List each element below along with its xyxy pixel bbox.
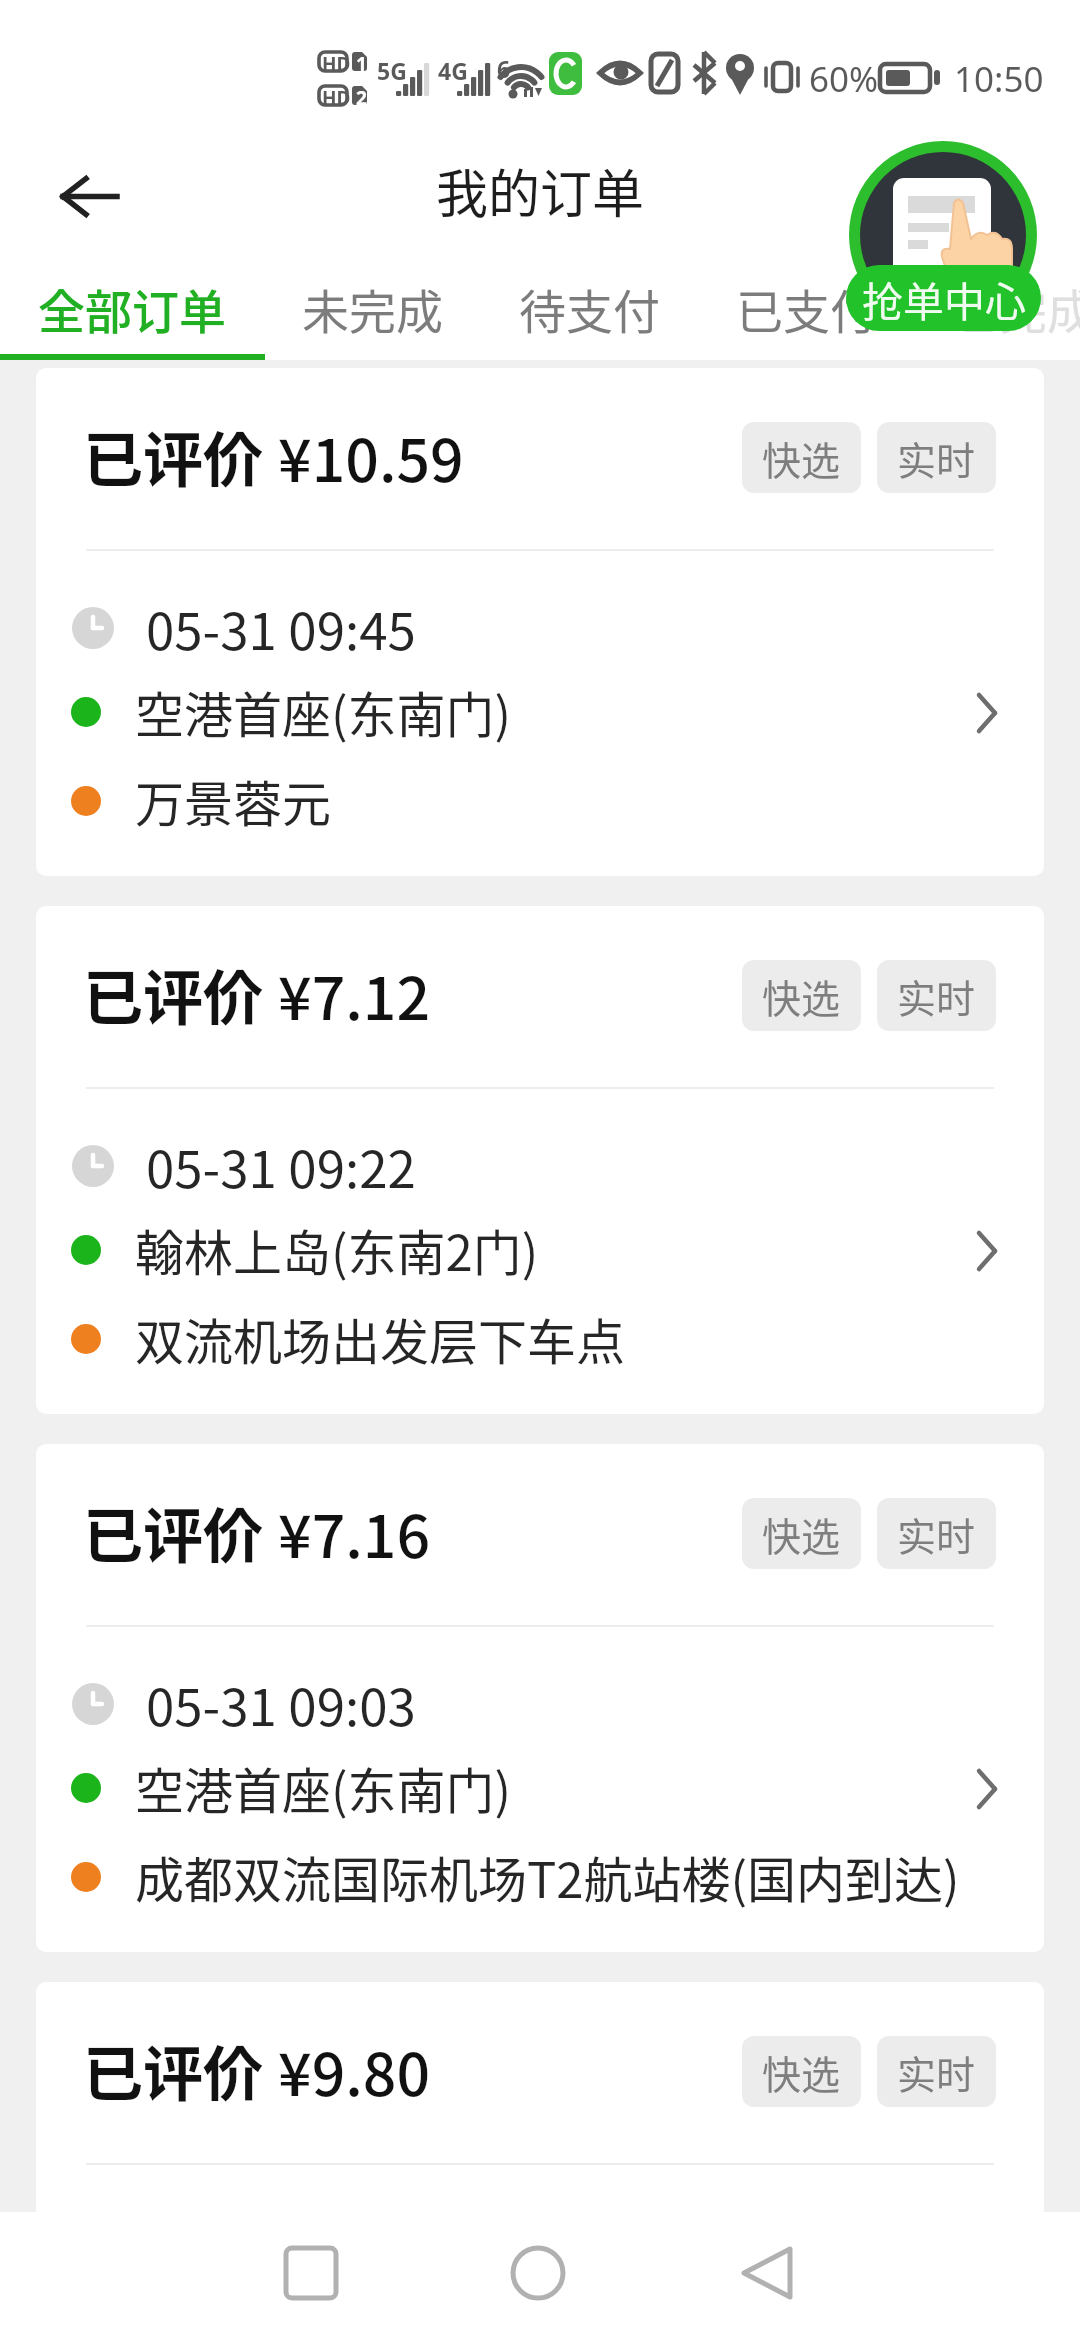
button[interactable]: 实时 (877, 2036, 996, 2107)
staticText: 待支付 (519, 274, 660, 342)
staticText: 60% (809, 55, 879, 103)
staticText: 已评价 (83, 2026, 263, 2113)
staticText: ¥7.16 (278, 1490, 431, 1575)
staticText: 5G (377, 55, 407, 86)
button[interactable]: 实时 (877, 422, 996, 493)
staticText: 05-31 09:03 (146, 1667, 416, 1741)
staticText: 快选 (762, 1506, 841, 1562)
button[interactable]: 未完成 (302, 258, 443, 358)
staticText: 实时 (897, 2044, 976, 2100)
staticText: 实时 (897, 1506, 976, 1562)
staticText: 未完成 (302, 274, 443, 342)
staticText: 05-31 09:45 (146, 591, 416, 665)
staticText: 已完成 (953, 274, 1080, 342)
staticText: ¥10.59 (278, 414, 464, 499)
staticText: 已支付 (736, 274, 877, 342)
staticText: 快选 (762, 430, 841, 486)
button[interactable]: 已评价 (36, 1444, 1044, 1952)
staticText: 成都双流国际机场T2航站楼(国内到达) (135, 1841, 960, 1912)
button[interactable]: Home (478, 2233, 598, 2340)
staticText: HD (322, 85, 351, 111)
button[interactable]: 快选 (742, 422, 861, 493)
staticText: 抢单中心 (862, 269, 1026, 328)
staticText: 空港首座(东南门) (135, 676, 512, 747)
staticText: 翰林上岛(东南2门) (135, 1214, 539, 1285)
button[interactable]: Recents (251, 2233, 371, 2340)
staticText: 万景蓉元 (135, 765, 332, 836)
staticText: 2 (356, 85, 367, 111)
button[interactable]: 全部订单 (38, 258, 226, 358)
staticText: 实时 (897, 968, 976, 1024)
button[interactable]: 已评价 (36, 368, 1044, 876)
staticText: 快选 (762, 968, 841, 1024)
staticText: 6 (497, 53, 511, 84)
staticText: HD (322, 51, 351, 77)
staticText: 我的订单 (436, 153, 645, 228)
button[interactable]: Back (43, 155, 129, 241)
button[interactable]: Back (707, 2233, 827, 2340)
staticText: 全部订单 (38, 274, 226, 342)
staticText: ¥9.80 (278, 2028, 431, 2113)
button[interactable]: 已评价 (36, 1982, 1044, 2212)
staticText: 1 (356, 51, 367, 77)
staticText: 已评价 (83, 950, 263, 1037)
staticText: 10:50 (954, 55, 1044, 103)
button[interactable]: 快选 (742, 1498, 861, 1569)
button[interactable]: 快选 (742, 960, 861, 1031)
staticText: 05-31 09:22 (146, 1129, 416, 1203)
staticText: ¥7.12 (278, 952, 431, 1037)
staticText: 快选 (762, 2044, 841, 2100)
button[interactable]: 实时 (877, 960, 996, 1031)
staticText: 已评价 (83, 412, 263, 499)
button[interactable]: 待支付 (519, 258, 660, 358)
staticText: 空港首座(东南门) (135, 1752, 512, 1823)
staticText: 4G (438, 55, 468, 86)
button[interactable]: 已支付 (736, 258, 877, 358)
staticText: 双流机场出发层下车点 (135, 1303, 626, 1374)
button[interactable]: 已评价 (36, 906, 1044, 1414)
button[interactable]: 抢单中心 (846, 141, 1041, 329)
button[interactable]: 实时 (877, 1498, 996, 1569)
staticText: 已评价 (83, 1488, 263, 1575)
button[interactable]: 快选 (742, 2036, 861, 2107)
button[interactable]: 已完成 (953, 258, 1080, 358)
staticText: 实时 (897, 430, 976, 486)
